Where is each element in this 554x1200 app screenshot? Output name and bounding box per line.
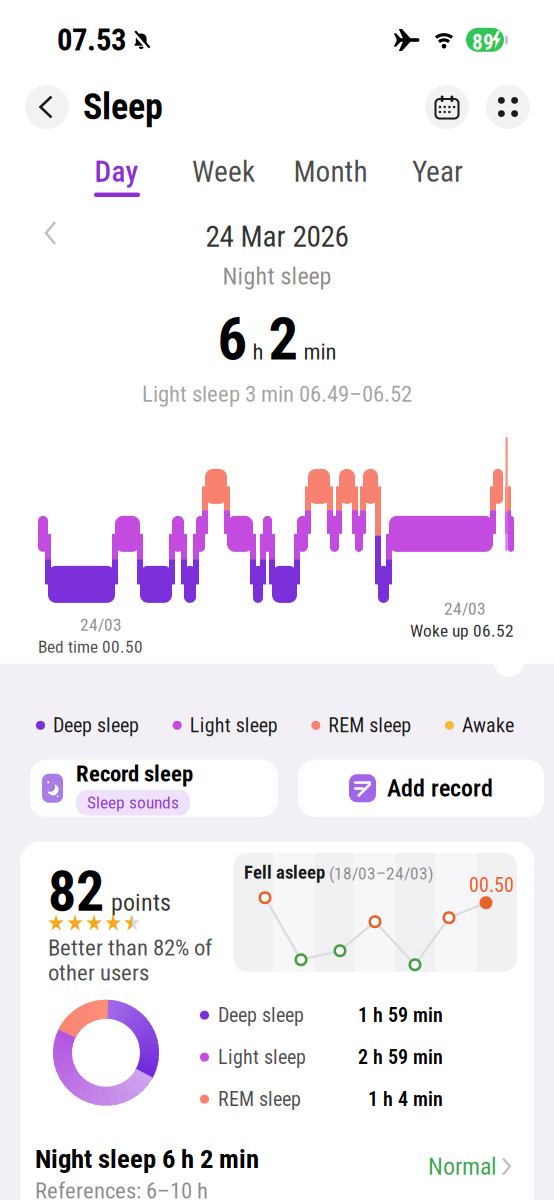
staticText: ★ — [47, 910, 65, 935]
button[interactable]: Calendar — [425, 85, 469, 129]
staticText: ★ — [123, 910, 141, 935]
staticText: 2 — [268, 306, 298, 373]
staticText: Awake — [462, 714, 514, 737]
staticText: Bed time 00.50 — [38, 637, 143, 657]
staticText: 1 h 4 min — [368, 1088, 443, 1111]
staticText: Sleep — [83, 86, 163, 127]
staticText: 24/03 — [80, 615, 122, 635]
staticText: h — [252, 339, 263, 365]
staticText: Record sleep — [76, 761, 193, 787]
staticText: Deep sleep — [53, 714, 139, 737]
button[interactable]: Day — [63, 155, 170, 188]
staticText: Month — [293, 155, 367, 188]
button[interactable]: Year — [384, 155, 491, 188]
staticText: Week — [192, 155, 255, 188]
staticText: Light sleep 3 min 06.49–06.52 — [142, 381, 412, 407]
button[interactable]: Add record — [298, 760, 544, 817]
staticText: 2 h 59 min — [358, 1046, 443, 1069]
button[interactable]: Record sleep — [30, 760, 278, 817]
staticText: ★ — [85, 910, 103, 935]
staticText: Fell asleep — [244, 862, 325, 883]
staticText: Add record — [387, 774, 493, 802]
staticText: Day — [94, 155, 138, 188]
staticText: Sleep sounds — [87, 793, 179, 813]
staticText: Better than 82% of — [48, 935, 212, 961]
staticText: 82 — [48, 860, 104, 924]
staticText: REM sleep — [218, 1088, 301, 1111]
staticText: ★ — [123, 910, 141, 935]
staticText: Night sleep 6 h 2 min — [35, 1144, 259, 1174]
button[interactable]: Week — [170, 155, 277, 188]
button[interactable]: Month — [277, 155, 384, 188]
staticText: Normal — [428, 1153, 497, 1180]
button[interactable]: Previous day — [43, 220, 59, 246]
staticText: 1 h 59 min — [358, 1004, 443, 1027]
staticText: ★ — [104, 910, 122, 935]
staticText: 6 — [217, 306, 247, 373]
staticText: References: 6–10 h — [35, 1178, 208, 1200]
staticText: 89 — [472, 30, 494, 55]
staticText: 24/03 — [444, 599, 486, 619]
staticText: other users — [48, 960, 149, 986]
staticText: REM sleep — [328, 714, 411, 737]
staticText: Woke up 06.52 — [410, 621, 514, 641]
button[interactable]: More — [486, 85, 530, 129]
button[interactable]: Back — [25, 85, 69, 129]
staticText: 00.50 — [469, 874, 514, 897]
staticText: ★ — [66, 910, 84, 935]
staticText: (18/03–24/03) — [329, 864, 434, 883]
staticText: min — [303, 339, 336, 365]
staticText: 07.53 — [57, 22, 126, 57]
staticText: Light sleep — [218, 1046, 306, 1069]
staticText: Deep sleep — [218, 1004, 304, 1027]
staticText: Light sleep — [190, 714, 278, 737]
staticText: Year — [412, 155, 463, 188]
button[interactable]: Normal — [428, 1153, 512, 1180]
staticText: 24 Mar 2026 — [205, 220, 348, 253]
staticText: points — [111, 889, 171, 916]
staticText: Night sleep — [222, 262, 331, 290]
